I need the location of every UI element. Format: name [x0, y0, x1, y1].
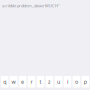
- staticText: e: [21, 78, 24, 85]
- button[interactable]: w: [10, 76, 17, 87]
- staticText: q: [3, 78, 6, 85]
- staticText: o: [75, 78, 78, 85]
- button[interactable]: r: [28, 76, 35, 87]
- staticText: u: [57, 78, 60, 85]
- staticText: w: [12, 78, 16, 85]
- staticText: r: [30, 78, 32, 85]
- staticText: scribble problem_above MUCH": [2, 3, 60, 8]
- button[interactable]: i: [64, 76, 71, 87]
- button[interactable]: z: [46, 76, 53, 87]
- button[interactable]: p: [81, 76, 89, 87]
- staticText: p: [84, 78, 87, 85]
- button[interactable]: u: [55, 76, 62, 87]
- staticText: z: [48, 78, 51, 85]
- button[interactable]: o: [73, 76, 80, 87]
- staticText: i: [67, 78, 68, 85]
- button[interactable]: q: [1, 76, 8, 87]
- staticText: t: [39, 78, 41, 85]
- button[interactable]: e: [19, 76, 26, 87]
- button[interactable]: t: [37, 76, 44, 87]
